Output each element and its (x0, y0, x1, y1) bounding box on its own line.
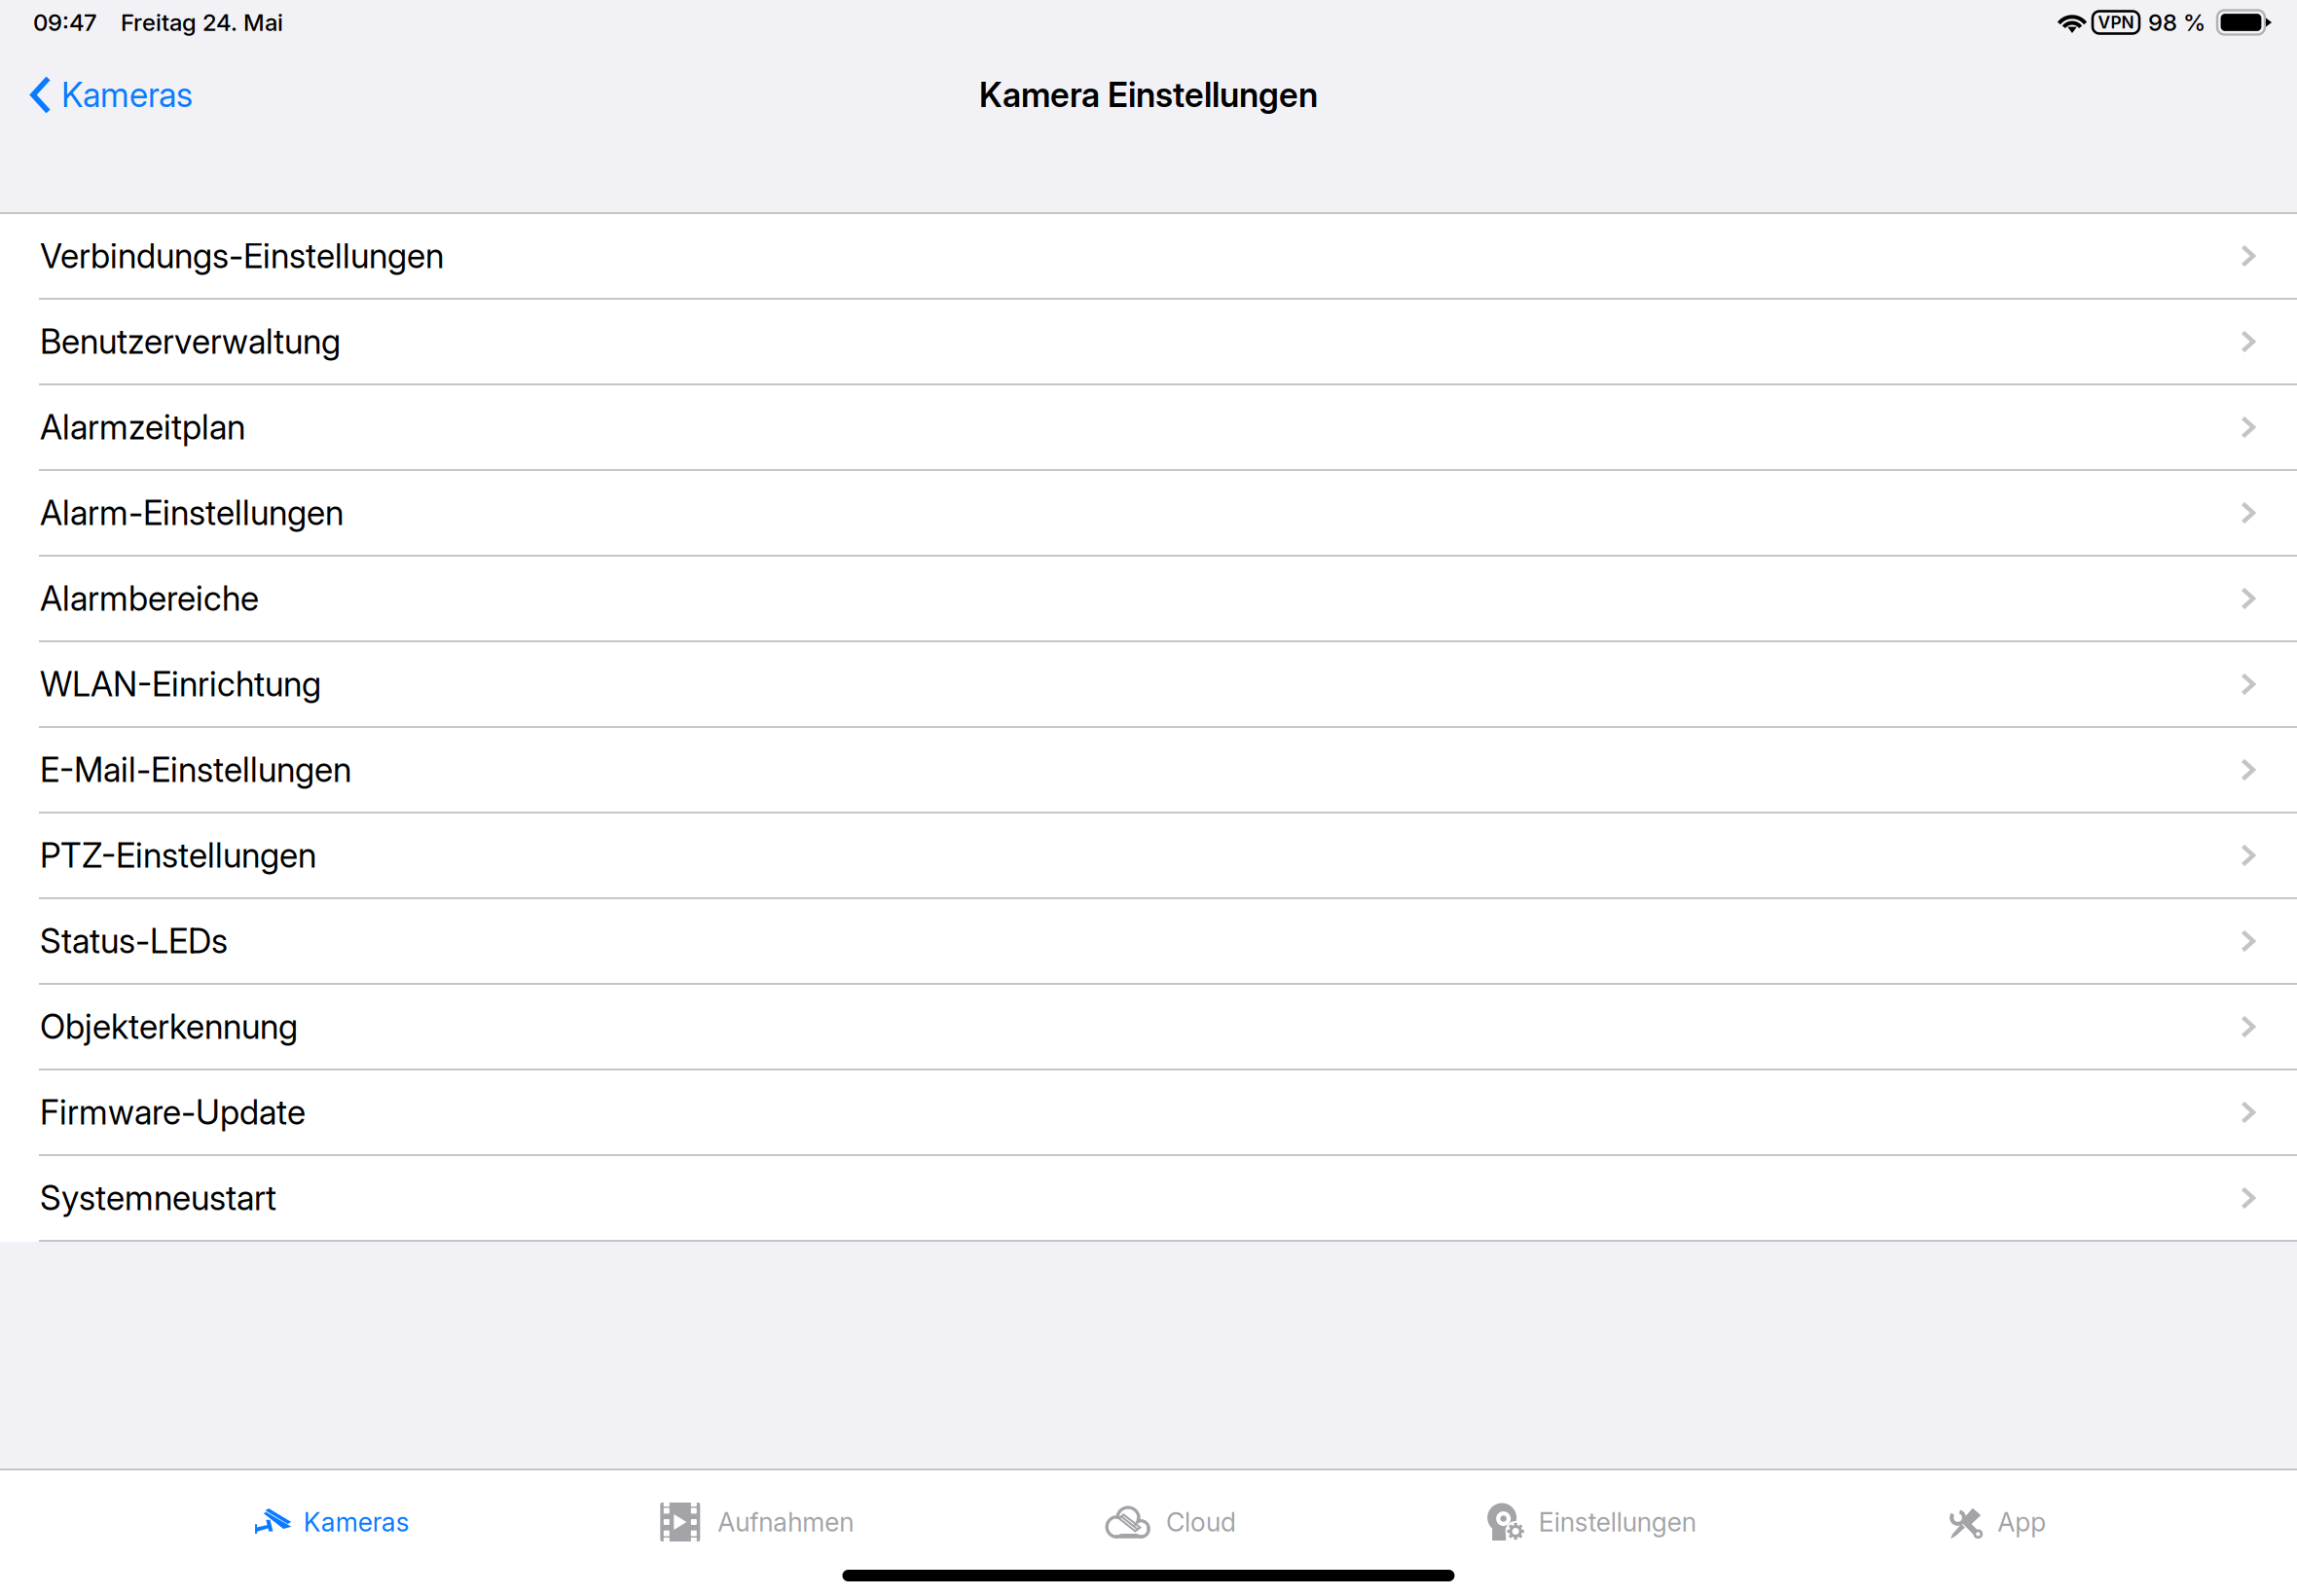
button[interactable]: Verbindungs-Einstellungen (0, 214, 2297, 300)
button[interactable]: Alarmzeitplan (0, 385, 2297, 471)
button[interactable]: PTZ-Einstellungen (0, 814, 2297, 899)
staticText: Firmware-Update (40, 1092, 306, 1133)
staticText: E-Mail-Einstellungen (40, 749, 351, 790)
staticText: Cloud (1166, 1506, 1236, 1538)
button[interactable]: Systemneustart (0, 1156, 2297, 1242)
button[interactable]: Firmware-Update (0, 1070, 2297, 1156)
staticText: Kameras (303, 1506, 409, 1538)
button[interactable]: E-Mail-Einstellungen (0, 728, 2297, 814)
staticText: Systemneustart (40, 1178, 276, 1218)
button[interactable]: Alarm-Einstellungen (0, 471, 2297, 557)
staticText: 09:47 (33, 8, 96, 36)
staticText: Status-LEDs (40, 921, 228, 961)
staticText: Alarmbereiche (40, 578, 259, 619)
button[interactable]: WLAN-Einrichtung (0, 642, 2297, 728)
staticText: 98 % (2148, 8, 2206, 36)
button[interactable]: Kameras (0, 58, 206, 131)
button[interactable]: Aufnahmen (660, 1478, 854, 1566)
button[interactable]: App (1947, 1478, 2046, 1566)
staticText: PTZ-Einstellungen (40, 835, 316, 876)
staticText: Objekterkennung (40, 1006, 298, 1047)
button[interactable]: Einstellungen (1487, 1478, 1696, 1566)
button[interactable]: Kameras (251, 1478, 409, 1566)
staticText: Kamera Einstellungen (979, 74, 1318, 115)
button[interactable]: Objekterkennung (0, 985, 2297, 1070)
staticText: Benutzerverwaltung (40, 321, 341, 362)
button[interactable]: Benutzerverwaltung (0, 300, 2297, 385)
staticText: VPN (2098, 12, 2134, 33)
staticText: Alarmzeitplan (40, 407, 245, 448)
button[interactable]: Status-LEDs (0, 899, 2297, 985)
button[interactable]: Alarmbereiche (0, 557, 2297, 642)
staticText: WLAN-Einrichtung (40, 664, 321, 704)
staticText: Aufnahmen (718, 1506, 854, 1538)
staticText: App (1998, 1506, 2046, 1538)
staticText: Alarm-Einstellungen (40, 492, 344, 533)
staticText: Verbindungs-Einstellungen (40, 236, 444, 276)
staticText: Kameras (61, 74, 193, 115)
staticText: Einstellungen (1539, 1506, 1696, 1538)
button[interactable]: Cloud (1105, 1478, 1236, 1566)
staticText: Freitag 24. Mai (121, 8, 283, 36)
